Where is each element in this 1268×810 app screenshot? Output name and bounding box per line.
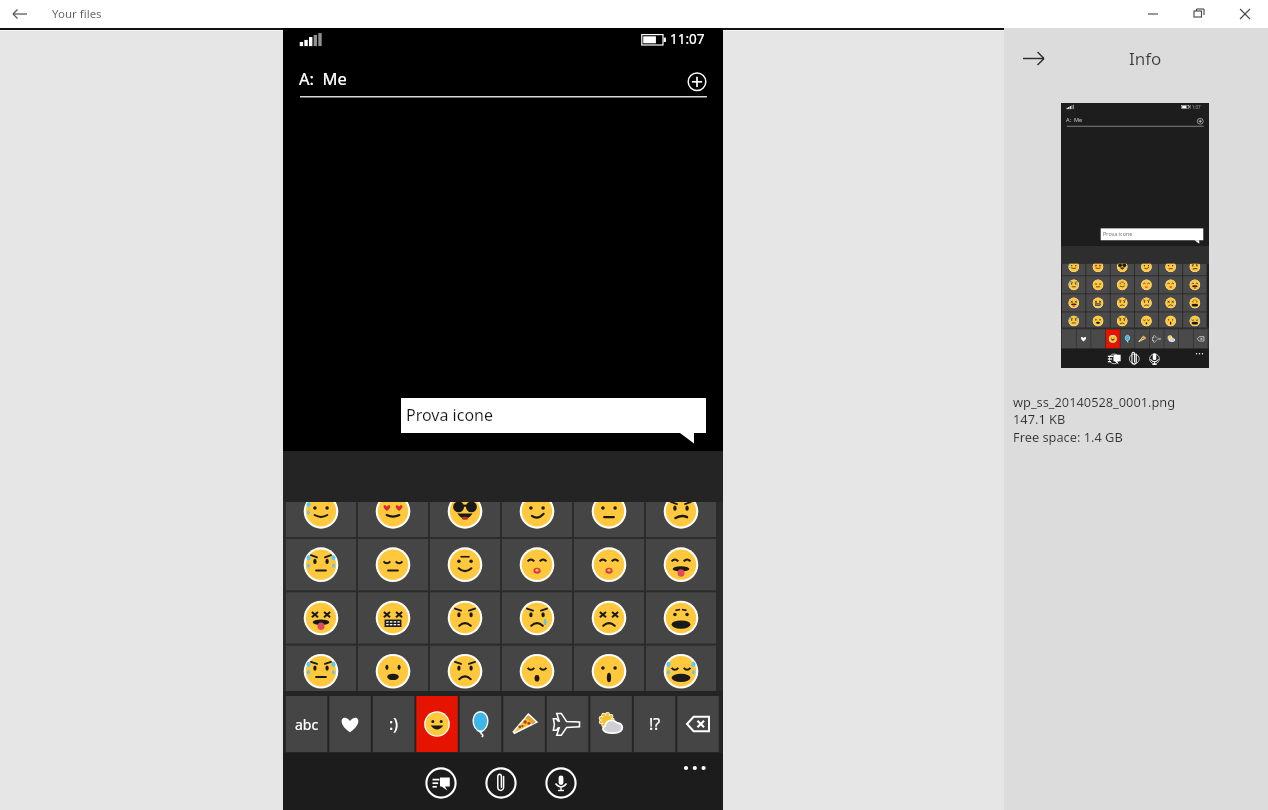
button[interactable]: Minimize xyxy=(1130,0,1176,28)
staticText: A: Me xyxy=(299,67,347,89)
button[interactable]: abc xyxy=(286,696,328,752)
staticText: :) xyxy=(389,713,399,735)
button[interactable]: Angry face xyxy=(646,502,716,538)
button[interactable]: Send message xyxy=(426,768,456,798)
button[interactable]: Restore xyxy=(1176,0,1222,28)
button[interactable]: Face with tongue out xyxy=(574,645,644,691)
button[interactable]: Crying face xyxy=(502,591,572,644)
button[interactable]: Travel xyxy=(547,696,589,752)
staticText: Prova icone xyxy=(1103,230,1133,237)
button[interactable]: Fearful face xyxy=(358,645,428,691)
staticText: abc xyxy=(295,715,319,734)
button[interactable]: :) xyxy=(373,696,415,752)
staticText: 11:07 xyxy=(670,30,705,48)
button[interactable]: Attach file xyxy=(486,768,516,798)
button[interactable]: !? xyxy=(634,696,676,752)
button[interactable]: Smirking face xyxy=(502,502,572,538)
button[interactable]: Frowning face xyxy=(430,645,500,691)
button[interactable]: Weather xyxy=(590,696,632,752)
button[interactable]: Anxious face xyxy=(286,645,356,691)
button[interactable]: Smiling face with heart eyes xyxy=(358,502,428,538)
button[interactable]: Smiling face with sunglasses xyxy=(430,502,500,538)
button[interactable]: Back xyxy=(0,0,40,28)
button[interactable]: Voice message xyxy=(546,768,576,798)
button[interactable]: Winking face xyxy=(286,502,356,538)
button[interactable]: Close info pane xyxy=(1011,36,1055,80)
staticText: wp_ss_20140528_0001.png 147.1 KB Free sp… xyxy=(1013,393,1176,445)
staticText: A: Me xyxy=(1066,116,1083,124)
button[interactable]: Confounded face xyxy=(574,591,644,644)
button[interactable]: Anxious face with sweat xyxy=(286,538,356,591)
button[interactable]: Worried face xyxy=(430,591,500,644)
button[interactable]: More options xyxy=(675,756,711,784)
staticText: Info xyxy=(1129,47,1162,70)
button[interactable]: Neutral face xyxy=(574,502,644,538)
button[interactable]: Loudly crying face xyxy=(646,645,716,691)
staticText: 11:07 xyxy=(1189,104,1201,110)
button[interactable]: Slightly smiling face xyxy=(430,538,500,591)
button[interactable]: Kissing face xyxy=(502,538,572,591)
staticText: Prova icone xyxy=(406,404,493,426)
button[interactable]: Squinting face with tongue xyxy=(286,591,356,644)
button[interactable]: Hearts xyxy=(329,696,371,752)
button[interactable]: Winking face with tongue xyxy=(646,538,716,591)
button[interactable]: Food xyxy=(503,696,545,752)
button[interactable]: Backspace xyxy=(677,696,719,752)
staticText: Your files xyxy=(52,6,102,22)
button[interactable]: Unamused face xyxy=(358,538,428,591)
button[interactable]: Add recipient xyxy=(679,64,715,100)
button[interactable]: Smileys xyxy=(416,696,458,752)
staticText: !? xyxy=(649,713,661,735)
button[interactable]: Close xyxy=(1222,0,1268,28)
button[interactable]: Grinning face with big eyes xyxy=(646,591,716,644)
button[interactable]: Sleepy face xyxy=(502,645,572,691)
button[interactable]: Grimacing face xyxy=(358,591,428,644)
button[interactable]: Celebration xyxy=(460,696,502,752)
button[interactable]: Face blowing a kiss xyxy=(574,538,644,591)
